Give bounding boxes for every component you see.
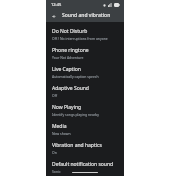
staticText: Off [52,93,57,98]
staticText: Do Not Disturb [52,28,88,35]
staticText: On [52,150,57,155]
staticText: Phone ringtone [52,47,89,54]
staticText: Sonic [52,169,61,173]
button[interactable]: Now Playing [46,101,124,120]
staticText: Vibration and haptics [52,142,102,149]
staticText: Your Not Adventure [52,55,84,60]
staticText: Now Playing [52,104,82,111]
button[interactable]: Live Caption [46,63,124,82]
staticText: Default notification sound [52,161,114,168]
staticText: 12:45 [51,2,62,7]
staticText: Now shown [52,131,71,136]
staticText: Adaptive Sound [52,85,89,92]
button[interactable]: Default notification sound [46,158,124,176]
staticText: Sound and vibration [62,12,111,19]
staticText: Media [52,123,67,130]
staticText: Live Caption [52,66,81,73]
button[interactable]: Media [46,120,124,139]
staticText: Identify songs playing nearby [52,112,100,117]
button[interactable]: Back [49,11,59,21]
staticText: Off / No interruptions from anyone [52,36,108,41]
button[interactable]: Phone ringtone [46,44,124,63]
button[interactable]: Adaptive Sound [46,82,124,101]
button[interactable]: Do Not Disturb [46,25,124,44]
button[interactable]: Vibration and haptics [46,139,124,158]
staticText: Automatically caption speech [52,74,99,79]
